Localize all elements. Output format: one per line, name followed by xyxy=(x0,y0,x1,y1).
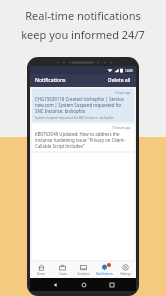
button[interactable]: Settings xyxy=(115,262,136,278)
button[interactable]: Home xyxy=(30,262,52,278)
button[interactable]: Recent apps xyxy=(107,280,116,289)
button[interactable]: 1 hour ago xyxy=(32,89,134,122)
staticText: 1 hour ago xyxy=(115,91,131,95)
staticText: Notifications xyxy=(96,272,113,276)
staticText: Cases xyxy=(59,272,67,276)
staticText: Delete all xyxy=(108,77,131,84)
staticText: 13 hours ago xyxy=(112,126,131,130)
button[interactable]: Back xyxy=(50,280,59,289)
button[interactable]: Notifications xyxy=(35,77,66,84)
staticText: System suspend requested for SNC Instanc… xyxy=(35,116,114,120)
staticText: Settings xyxy=(120,272,131,276)
button[interactable]: 13 hours ago xyxy=(32,124,134,151)
staticText: Incidents xyxy=(77,272,90,276)
staticText: keep you informed 24/7 xyxy=(21,27,145,42)
button[interactable]: Delete all xyxy=(108,77,131,84)
button[interactable]: Notifications xyxy=(94,262,115,278)
button[interactable]: Cases xyxy=(52,262,73,278)
staticText: Real-time notifications xyxy=(25,8,141,23)
button[interactable]: Home xyxy=(79,280,88,289)
staticText: Home xyxy=(37,272,45,276)
button[interactable]: Incidents xyxy=(73,262,94,278)
staticText: KB0763049 Updated: How to address the in… xyxy=(35,131,131,149)
staticText: 12:00 xyxy=(125,69,133,73)
staticText: CHG15639118 Created: bishopfox | Service… xyxy=(35,96,131,114)
